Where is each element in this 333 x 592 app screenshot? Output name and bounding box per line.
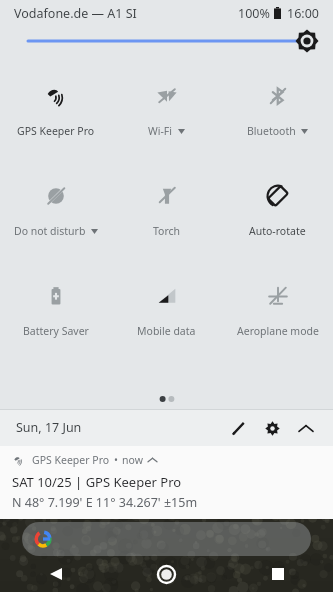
button[interactable]: Collapse <box>289 411 323 445</box>
button[interactable]: Battery Saver <box>0 268 111 368</box>
staticText: 100% <box>238 5 270 22</box>
staticText: GPS Keeper Pro <box>17 124 95 138</box>
staticText: Wi-Fi <box>148 124 173 138</box>
staticText: N 48° 7.199' E 11° 34.267' ±15m <box>12 494 198 511</box>
staticText: Mobile data <box>137 324 196 338</box>
button[interactable]: Do not disturb <box>0 168 111 268</box>
staticText: Torch <box>153 224 181 238</box>
staticText: Do not disturb <box>14 224 86 238</box>
button[interactable]: Edit <box>221 411 255 445</box>
button[interactable]: Home <box>111 556 222 592</box>
button[interactable]: Bluetooth <box>222 68 333 168</box>
staticText: Vodafone.de — A1 SI <box>14 5 137 22</box>
button[interactable]: Mobile data <box>111 268 222 368</box>
staticText: now <box>122 453 143 467</box>
staticText: Bluetooth <box>247 124 296 138</box>
button[interactable]: Recents <box>222 556 333 592</box>
button[interactable]: Wi-Fi <box>111 68 222 168</box>
button[interactable]: GPS Keeper Pro <box>0 446 333 519</box>
button[interactable] <box>22 522 311 556</box>
staticText: Battery Saver <box>23 324 89 338</box>
button[interactable]: Back <box>0 556 111 592</box>
staticText: Aeroplane mode <box>237 324 319 338</box>
staticText: • <box>114 453 118 467</box>
button[interactable]: Aeroplane mode <box>222 268 333 368</box>
staticText: Auto-rotate <box>249 224 306 238</box>
staticText: GPS Keeper Pro <box>32 453 110 467</box>
staticText: 16:00 <box>287 5 319 22</box>
button[interactable]: GPS Keeper Pro <box>0 68 111 168</box>
button[interactable]: Settings <box>255 411 289 445</box>
button[interactable]: Torch <box>111 168 222 268</box>
button[interactable]: Auto-rotate <box>222 168 333 268</box>
staticText: Sun, 17 Jun <box>16 419 82 436</box>
staticText: SAT 10/25 | GPS Keeper Pro <box>12 473 182 491</box>
